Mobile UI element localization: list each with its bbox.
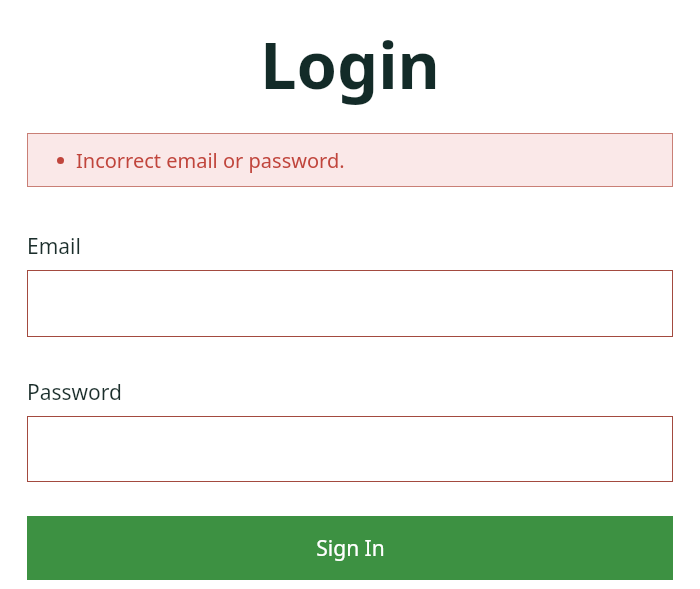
button[interactable] — [27, 416, 673, 482]
staticText: Login — [260, 20, 440, 109]
staticText: Password — [27, 378, 122, 407]
button[interactable]: Sign In — [27, 516, 673, 580]
staticText: Incorrect email or password. — [76, 147, 345, 174]
staticText: Sign In — [316, 534, 385, 563]
staticText: Email — [27, 232, 81, 261]
button[interactable] — [27, 270, 673, 337]
